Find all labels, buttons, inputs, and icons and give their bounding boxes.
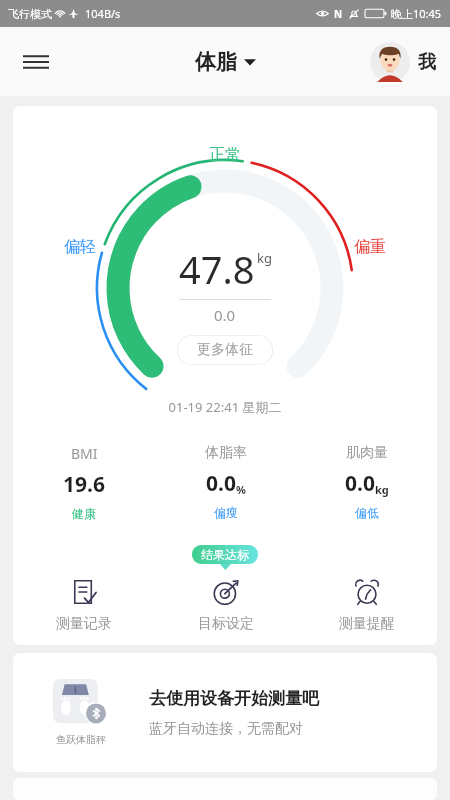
button[interactable]: Menu [14, 40, 58, 84]
staticText: 0.0 [214, 305, 236, 325]
button[interactable]: 肌肉量 [296, 444, 437, 520]
button[interactable]: 测量记录 [13, 578, 155, 633]
staticText: 肌肉量 [346, 444, 388, 462]
staticText: 更多体征 [197, 341, 253, 359]
staticText: 结果达标 [201, 547, 249, 562]
staticText: 蓝牙自动连接，无需配对 [149, 720, 303, 738]
staticText: 飞行模式 [8, 7, 52, 21]
staticText: kg [257, 249, 272, 267]
staticText: 偏重 [354, 237, 386, 257]
button[interactable]: 测量提醒 [296, 578, 437, 633]
staticText: 健康 [72, 506, 96, 521]
staticText: BMI [71, 444, 98, 463]
staticText: 我 [418, 51, 436, 74]
staticText: 正常 [209, 145, 241, 165]
staticText: 目标设定 [198, 615, 254, 633]
staticText: 0.0 [345, 469, 375, 498]
staticText: 测量提醒 [339, 615, 395, 633]
button[interactable]: 目标设定 [155, 578, 296, 633]
staticText: 体脂 [195, 49, 237, 75]
staticText: 体脂率 [205, 444, 247, 462]
staticText: 测量记录 [56, 615, 112, 633]
button[interactable]: 体脂 [195, 49, 256, 75]
button[interactable]: BMI [13, 444, 155, 521]
staticText: 偏低 [355, 505, 379, 520]
staticText: 鱼跃体脂秤 [56, 733, 106, 746]
staticText: 晚上10:45 [391, 6, 442, 21]
button[interactable]: 体脂率 [155, 444, 296, 520]
button[interactable]: 鱼跃体脂秤 [13, 653, 437, 772]
staticText: 01-19 22:41 星期二 [13, 398, 437, 416]
button[interactable]: 我 [370, 42, 436, 82]
staticText: % [236, 482, 246, 497]
staticText: 偏轻 [64, 237, 96, 257]
staticText: kg [375, 482, 389, 497]
staticText: 0.0 [206, 469, 236, 498]
staticText: 47.8 [179, 243, 255, 295]
staticText: 19.6 [63, 470, 105, 499]
staticText: N [334, 7, 343, 21]
staticText: 去使用设备开始测量吧 [149, 688, 319, 709]
staticText: 104B/s [85, 6, 121, 21]
button[interactable]: 更多体征 [176, 335, 274, 365]
staticText: 偏瘦 [214, 505, 238, 520]
